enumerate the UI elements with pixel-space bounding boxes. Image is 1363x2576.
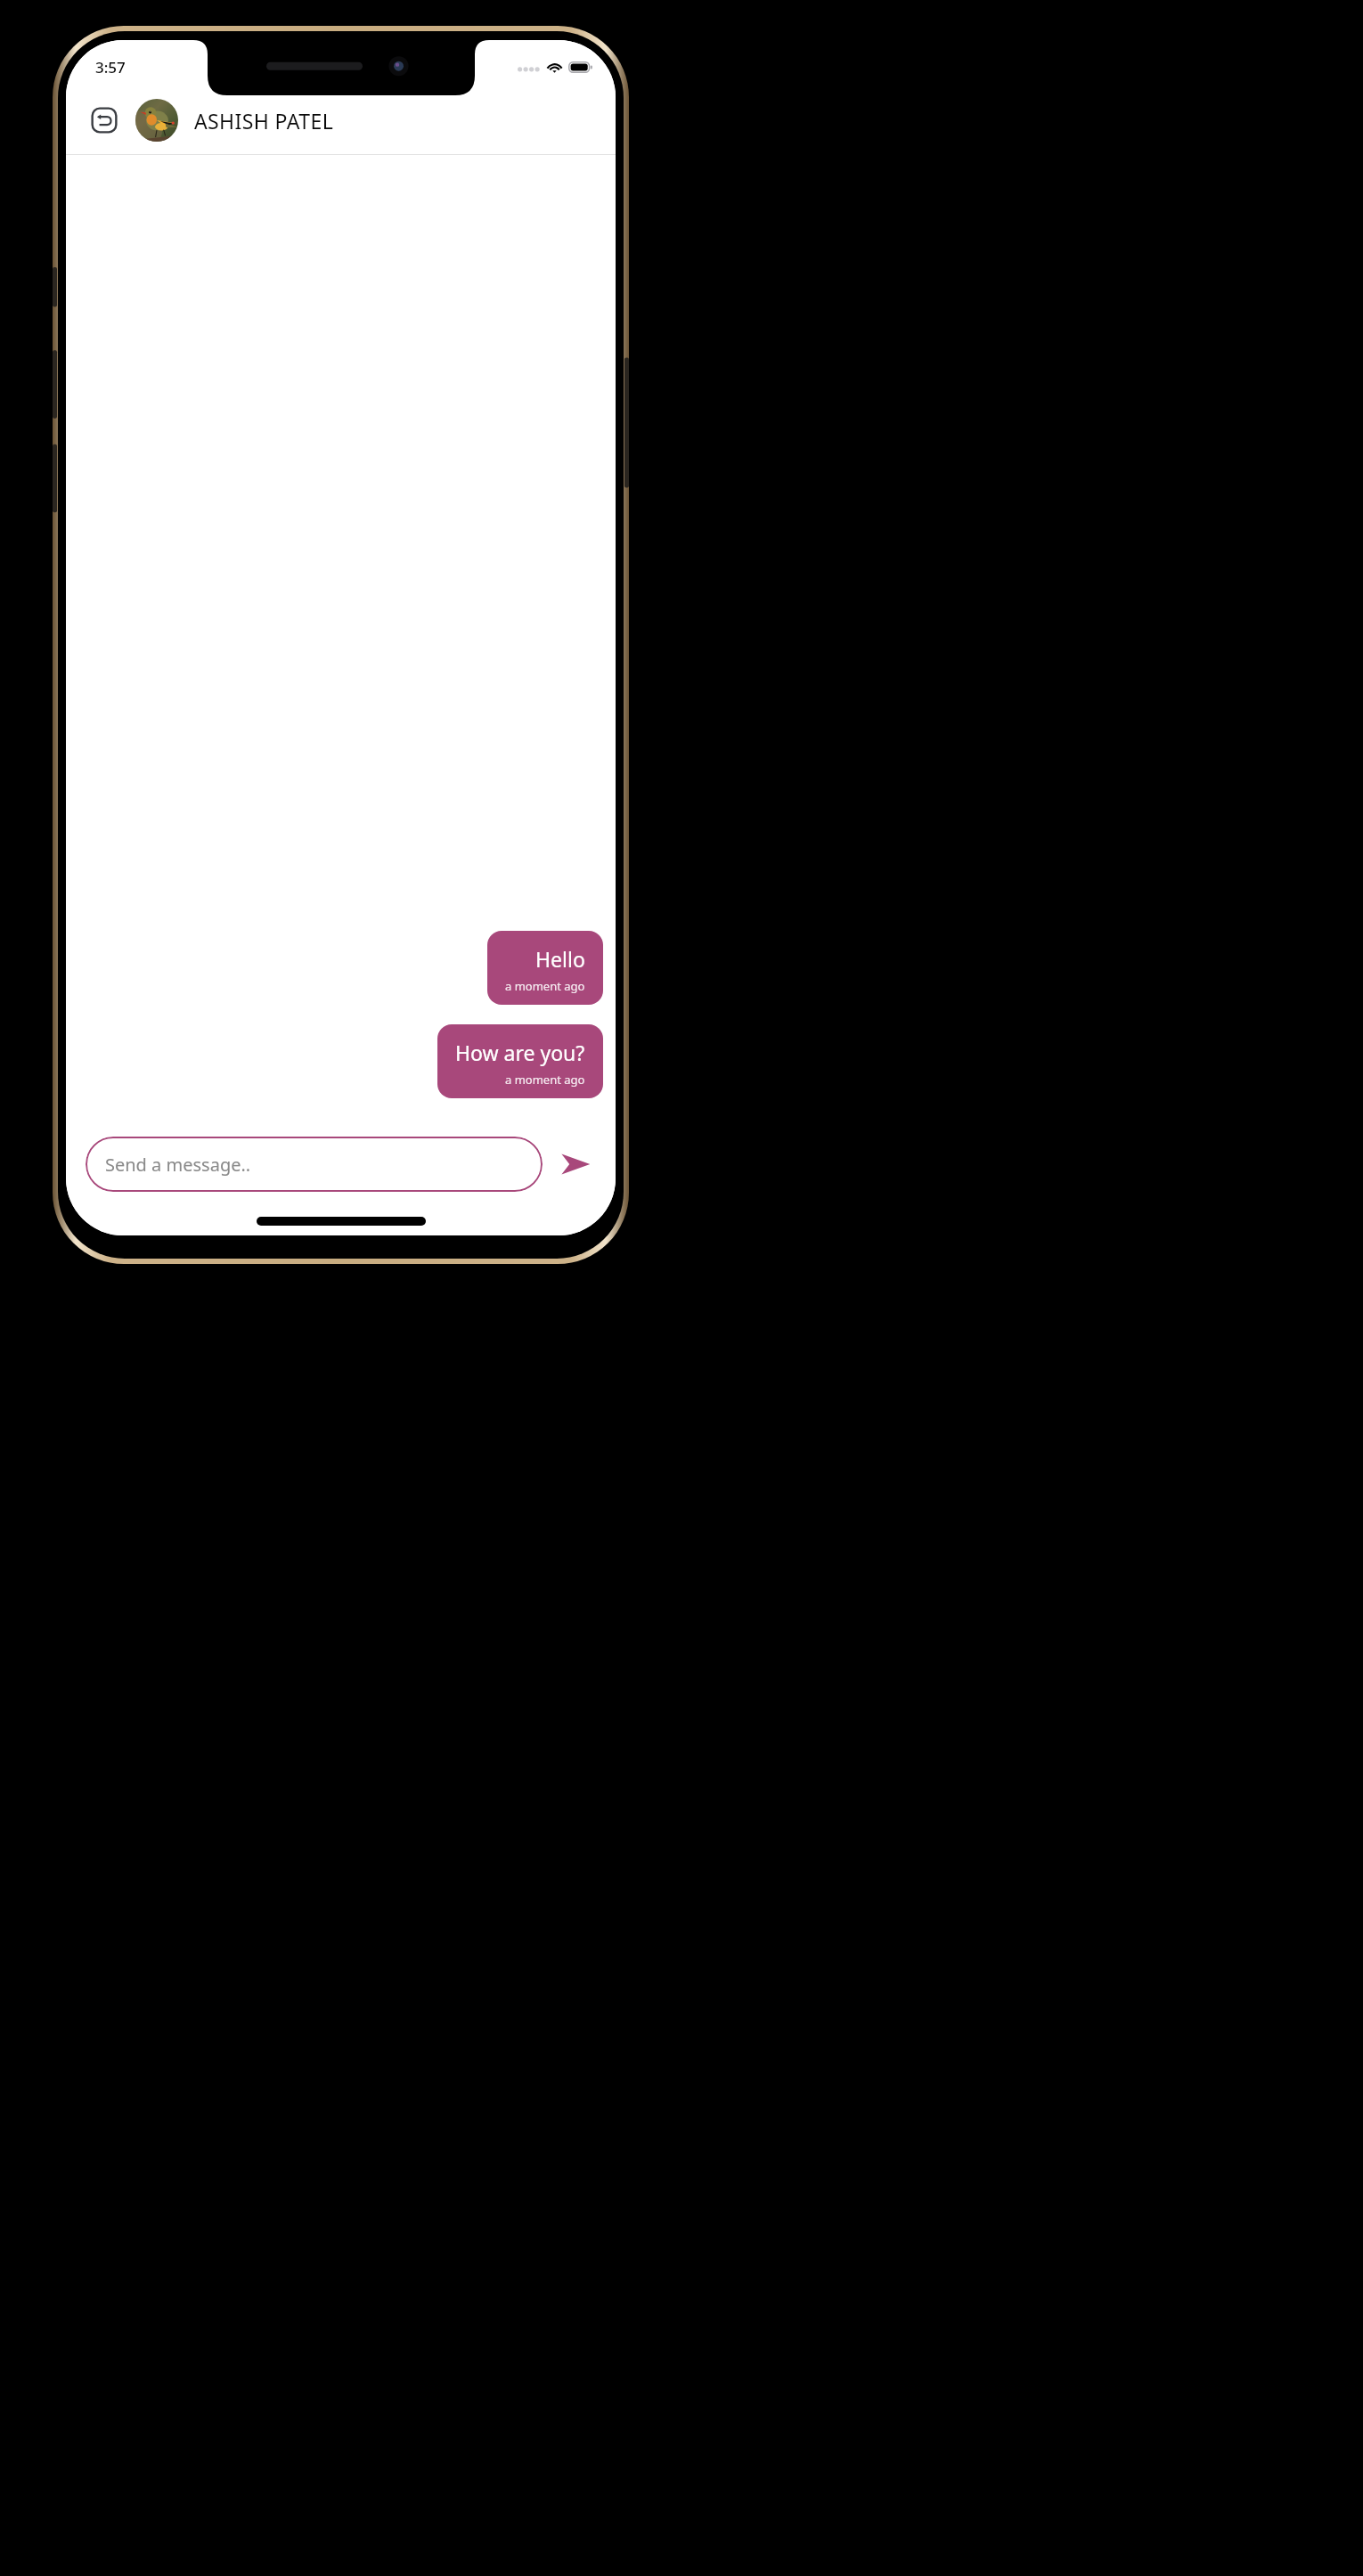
staticText: Hello <box>535 945 585 973</box>
staticText: 3:57 <box>95 57 126 77</box>
staticText: a moment ago <box>505 1072 585 1088</box>
staticText: ASHISH PATEL <box>194 107 334 135</box>
button[interactable]: Send a message.. <box>86 1137 543 1192</box>
staticText: Send a message.. <box>105 1153 251 1177</box>
button[interactable]: Back <box>86 102 123 139</box>
staticText: How are you? <box>455 1039 585 1066</box>
staticText: a moment ago <box>505 978 585 994</box>
button[interactable]: Send <box>555 1144 596 1185</box>
button[interactable]: Hello <box>487 931 603 1005</box>
button[interactable]: How are you? <box>437 1024 603 1098</box>
button[interactable]: Profile photo <box>135 99 178 142</box>
